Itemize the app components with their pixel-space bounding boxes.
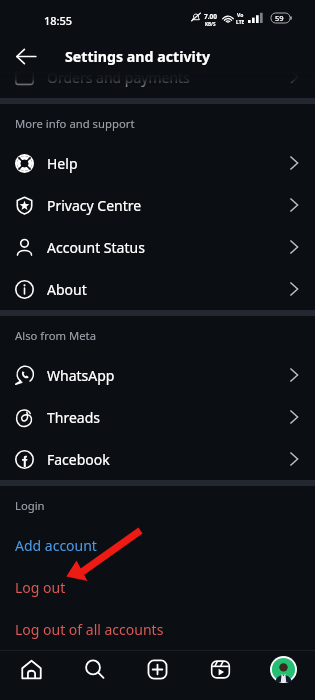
staticText: Privacy Centre xyxy=(47,196,142,215)
staticText: 18:55 xyxy=(44,13,73,28)
button[interactable]: Log out xyxy=(0,566,315,608)
staticText: Vo xyxy=(237,12,244,19)
button[interactable]: WhatsApp xyxy=(0,354,315,396)
button[interactable]: Add account xyxy=(0,524,315,566)
staticText: 7.00 xyxy=(204,12,217,21)
staticText: Orders and payments xyxy=(47,68,190,87)
button[interactable]: Log out of all accounts xyxy=(0,608,315,650)
staticText: Add account xyxy=(15,536,97,555)
button[interactable]: Privacy Centre xyxy=(0,184,315,226)
staticText: 59 xyxy=(275,13,284,23)
staticText: Account Status xyxy=(47,238,145,257)
button[interactable]: Account Status xyxy=(0,226,315,268)
button[interactable]: Facebook xyxy=(0,438,315,480)
staticText: Help xyxy=(47,154,78,173)
staticText: Also from Meta xyxy=(15,328,97,343)
button[interactable]: Reels xyxy=(189,651,252,687)
staticText: Settings and activity xyxy=(65,47,211,66)
button[interactable]: Back xyxy=(10,41,41,72)
staticText: Threads xyxy=(47,408,101,427)
staticText: Facebook xyxy=(47,450,110,469)
button[interactable]: Search xyxy=(63,651,126,687)
staticText: WhatsApp xyxy=(47,366,115,385)
button[interactable]: Home xyxy=(0,651,63,687)
staticText: Log out of all accounts xyxy=(15,620,164,639)
button[interactable]: Threads xyxy=(0,396,315,438)
button[interactable]: About xyxy=(0,268,315,310)
button[interactable]: Profile xyxy=(252,651,315,687)
button[interactable]: Create xyxy=(126,651,189,687)
staticText: LTE xyxy=(236,19,245,26)
staticText: Log out xyxy=(15,578,66,597)
staticText: KB/S xyxy=(205,21,216,27)
staticText: Login xyxy=(15,498,45,513)
staticText: About xyxy=(47,280,87,299)
staticText: More info and support xyxy=(15,116,135,131)
button[interactable]: Help xyxy=(0,142,315,184)
